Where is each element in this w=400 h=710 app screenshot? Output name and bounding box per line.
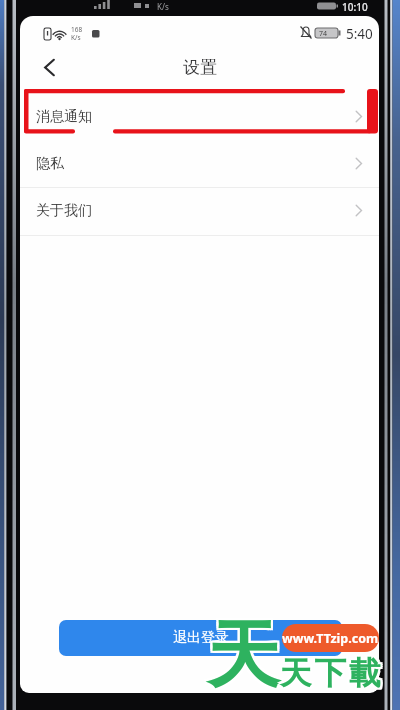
staticText: 退出登录 bbox=[173, 629, 229, 647]
staticText: 天 bbox=[207, 612, 280, 704]
staticText: 天 bbox=[205, 612, 278, 704]
button[interactable]: 隐私 bbox=[20, 140, 379, 187]
staticText: 天 bbox=[209, 610, 282, 702]
staticText: 10:10 bbox=[342, 0, 368, 12]
staticText: 消息通知 bbox=[36, 108, 92, 126]
staticText: www.TTzip.com bbox=[282, 630, 379, 647]
staticText: 天 bbox=[205, 608, 278, 700]
button[interactable] bbox=[33, 51, 65, 83]
staticText: 天下載 bbox=[278, 656, 382, 696]
staticText: K/s bbox=[157, 1, 169, 12]
staticText: 天下載 bbox=[280, 652, 384, 692]
staticText: 天 bbox=[207, 608, 280, 700]
staticText: 168 K/s bbox=[71, 25, 83, 42]
staticText: 天下載 bbox=[278, 654, 382, 694]
staticText: 天 bbox=[205, 610, 278, 702]
staticText: 关于我们 bbox=[36, 202, 92, 220]
staticText: 天下載 bbox=[282, 652, 386, 692]
staticText: 5:40 bbox=[346, 25, 373, 43]
button[interactable]: 消息通知 bbox=[20, 93, 379, 140]
button[interactable]: 关于我们 bbox=[20, 187, 379, 234]
staticText: 天下載 bbox=[280, 654, 384, 694]
staticText: 设置 bbox=[183, 57, 217, 78]
staticText: 74 bbox=[319, 29, 328, 39]
staticText: 天 bbox=[209, 608, 282, 700]
staticText: 隐私 bbox=[36, 155, 64, 173]
staticText: 天下載 bbox=[282, 654, 386, 694]
staticText: 天 bbox=[207, 610, 280, 702]
button[interactable]: 退出登录 bbox=[59, 620, 342, 656]
staticText: 天下載 bbox=[278, 652, 382, 692]
staticText: 天下載 bbox=[280, 656, 384, 696]
staticText: 天下載 bbox=[282, 656, 386, 696]
staticText: 天 bbox=[209, 612, 282, 704]
